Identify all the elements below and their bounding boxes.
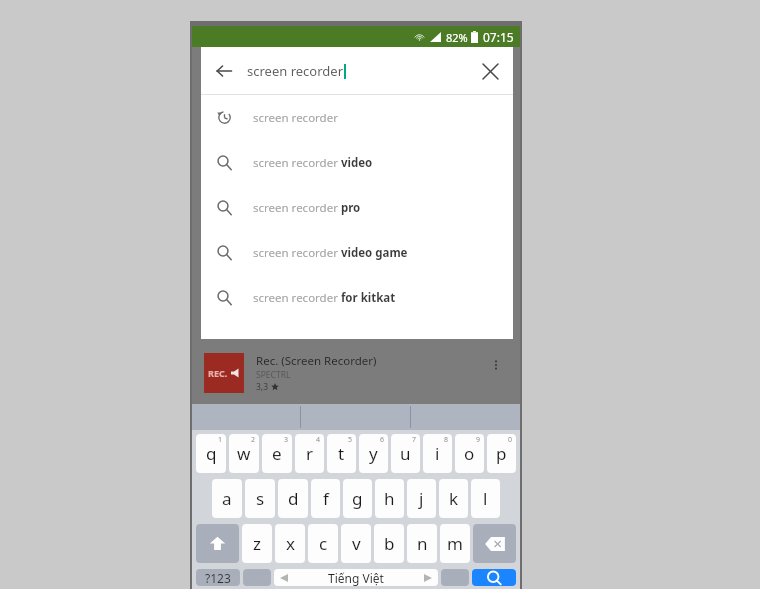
button[interactable]: Shift [196, 524, 239, 563]
staticText: e [272, 442, 282, 465]
button[interactable]: Back [201, 48, 247, 94]
button[interactable]: screen recorder video [201, 140, 513, 185]
staticText: a [222, 487, 232, 510]
staticText: 4 [316, 435, 321, 445]
staticText: 1 [218, 435, 223, 445]
staticText: z [253, 532, 261, 555]
staticText: q [206, 442, 217, 465]
staticText: w [237, 442, 251, 465]
button[interactable]: Clear [467, 48, 513, 94]
staticText: REC. [208, 367, 228, 379]
button[interactable]: h [375, 479, 404, 518]
staticText: ?123 [205, 570, 231, 586]
button[interactable]: q [196, 434, 226, 473]
staticText: 8 [444, 435, 449, 445]
button[interactable]: screen recorder pro [201, 185, 513, 230]
staticText: m [447, 532, 463, 555]
staticText: v [352, 532, 361, 555]
staticText: c [319, 532, 328, 555]
staticText: p [496, 442, 507, 465]
staticText: SPECTRL [256, 369, 291, 381]
button[interactable]: y [359, 434, 388, 473]
staticText: 2 [251, 435, 256, 445]
staticText: screen recorder video [253, 155, 373, 171]
staticText: Rec. (Screen Recorder) [256, 353, 377, 369]
button[interactable]: p [487, 434, 516, 473]
staticText: h [384, 487, 395, 510]
staticText: f [323, 487, 329, 510]
staticText: x [286, 532, 295, 555]
staticText: d [288, 487, 299, 510]
staticText: s [256, 487, 265, 510]
staticText: screen recorder for kitkat [253, 290, 396, 306]
button[interactable]: b [374, 524, 404, 563]
staticText: i [435, 442, 440, 465]
button[interactable]: Search [472, 569, 516, 586]
button[interactable]: x [275, 524, 305, 563]
button[interactable]: o [455, 434, 484, 473]
staticText: g [352, 487, 363, 510]
staticText: 5 [348, 435, 353, 445]
button[interactable]: screen recorder video game [201, 230, 513, 275]
staticText: o [464, 442, 475, 465]
staticText: 07:15 [483, 29, 514, 45]
button[interactable]: More options [484, 353, 508, 377]
staticText: k [449, 487, 459, 510]
staticText: j [419, 487, 424, 510]
button[interactable]: Emoji [243, 569, 271, 586]
button[interactable]: l [471, 479, 500, 518]
staticText: screen recorder [247, 62, 344, 80]
staticText: l [483, 487, 488, 510]
staticText: r [306, 442, 314, 465]
button[interactable]: e [262, 434, 292, 473]
staticText: y [369, 442, 378, 465]
staticText: t [338, 442, 345, 465]
staticText: screen recorder [253, 110, 338, 126]
button[interactable]: m [440, 524, 470, 563]
button[interactable]: i [423, 434, 452, 473]
button[interactable]: s [245, 479, 275, 518]
staticText: 0 [508, 435, 513, 445]
button[interactable]: c [308, 524, 338, 563]
button[interactable]: Back [201, 47, 513, 94]
staticText: 82% [446, 30, 468, 45]
staticText: 3 [284, 435, 289, 445]
staticText: u [400, 442, 411, 465]
button[interactable]: z [242, 524, 272, 563]
button[interactable]: t [327, 434, 356, 473]
button[interactable]: f [311, 479, 340, 518]
staticText: 6 [380, 435, 385, 445]
button[interactable]: a [212, 479, 242, 518]
button[interactable]: REC. [200, 353, 512, 401]
staticText: 3,3 [256, 381, 269, 393]
button[interactable]: Period [441, 569, 469, 586]
button[interactable]: Tiếng Việt [274, 569, 438, 586]
staticText: 9 [476, 435, 481, 445]
button[interactable]: d [278, 479, 308, 518]
button[interactable]: ?123 [196, 569, 240, 586]
staticText: screen recorder pro [253, 200, 361, 216]
staticText: screen recorder video game [253, 245, 408, 261]
button[interactable]: v [341, 524, 371, 563]
button[interactable]: r [295, 434, 324, 473]
button[interactable]: n [407, 524, 437, 563]
button[interactable]: screen recorder [201, 95, 513, 140]
button[interactable]: screen recorder for kitkat [201, 275, 513, 320]
staticText: 7 [412, 435, 417, 445]
button[interactable]: Backspace [473, 524, 516, 563]
button[interactable]: j [407, 479, 436, 518]
button[interactable]: k [439, 479, 468, 518]
staticText: Tiếng Việt [328, 570, 384, 586]
staticText: b [384, 532, 395, 555]
staticText: n [417, 532, 428, 555]
button[interactable]: u [391, 434, 420, 473]
button[interactable]: w [229, 434, 259, 473]
button[interactable]: g [343, 479, 372, 518]
